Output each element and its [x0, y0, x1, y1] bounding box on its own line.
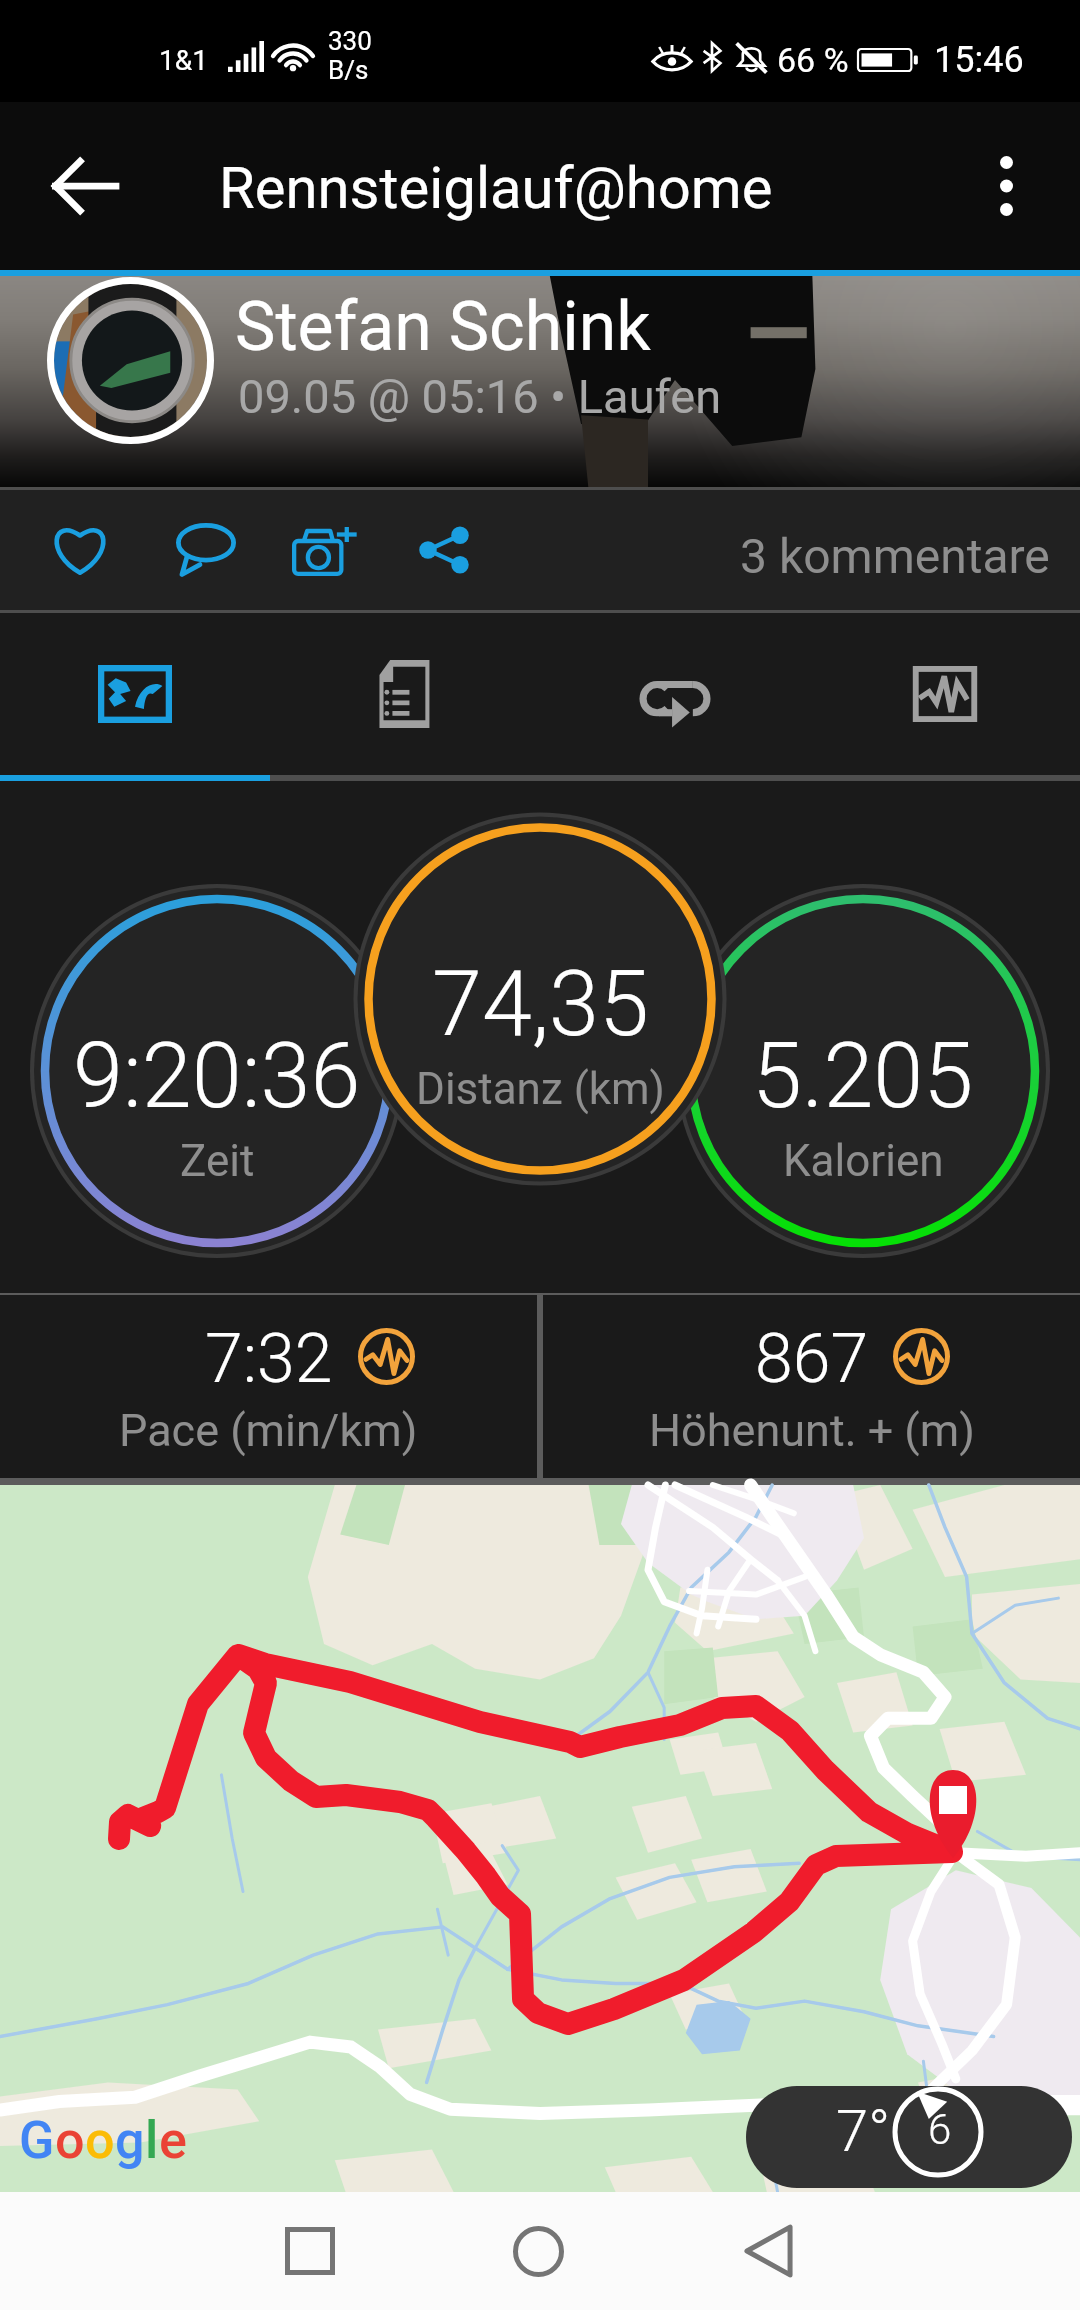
button[interactable]: Laps — [540, 613, 810, 775]
button[interactable]: More options — [954, 134, 1058, 238]
staticText: Kalorien — [783, 1135, 944, 1187]
staticText: Rennsteiglauf@home — [219, 154, 773, 222]
staticText: Höhenunt. + (m) — [649, 1404, 975, 1457]
button[interactable]: Back — [709, 2192, 827, 2310]
staticText: 7:32 — [205, 1319, 333, 1399]
staticText: Pace (min/km) — [119, 1404, 418, 1457]
button[interactable]: 867 — [543, 1295, 1080, 1478]
staticText: G — [19, 2110, 55, 2171]
button[interactable]: 7:32 — [0, 1295, 537, 1478]
button[interactable]: Map — [0, 613, 270, 775]
staticText: Zeit — [180, 1135, 255, 1187]
button[interactable]: Details — [270, 613, 540, 775]
staticText: 330 — [328, 26, 372, 56]
staticText: 7° — [836, 2097, 891, 2165]
button[interactable]: Comment — [156, 499, 256, 599]
staticText: 09.05 @ 05:16 • Laufen — [238, 369, 722, 424]
staticText: 6 — [928, 2105, 952, 2154]
staticText: Distanz (km) — [416, 1063, 665, 1115]
staticText: 1&1 — [159, 44, 208, 77]
button[interactable]: Heart rate — [810, 613, 1080, 775]
button[interactable]: Recent apps — [251, 2192, 369, 2310]
staticText: o — [55, 2110, 85, 2171]
staticText: 74,35 — [432, 952, 649, 1057]
staticText: l — [145, 2110, 159, 2171]
button[interactable]: Like — [30, 499, 130, 599]
staticText: 15:46 — [934, 39, 1024, 81]
staticText: B/s — [328, 55, 369, 85]
staticText: g — [115, 2110, 145, 2171]
button[interactable]: Add photo — [275, 501, 375, 601]
staticText: o — [85, 2110, 115, 2171]
button[interactable]: Home — [479, 2192, 597, 2310]
staticText: 9:20:36 — [73, 1024, 361, 1129]
button[interactable]: Back — [32, 134, 136, 238]
staticText: Stefan Schink — [235, 287, 651, 367]
button[interactable]: 3 kommentare — [740, 528, 1050, 584]
staticText: 66 % — [777, 40, 849, 80]
staticText: e — [159, 2110, 187, 2171]
staticText: 5.205 — [752, 1024, 974, 1129]
button[interactable]: 7° — [746, 2086, 1072, 2188]
button[interactable]: Share — [394, 500, 494, 600]
staticText: 867 — [755, 1319, 869, 1399]
